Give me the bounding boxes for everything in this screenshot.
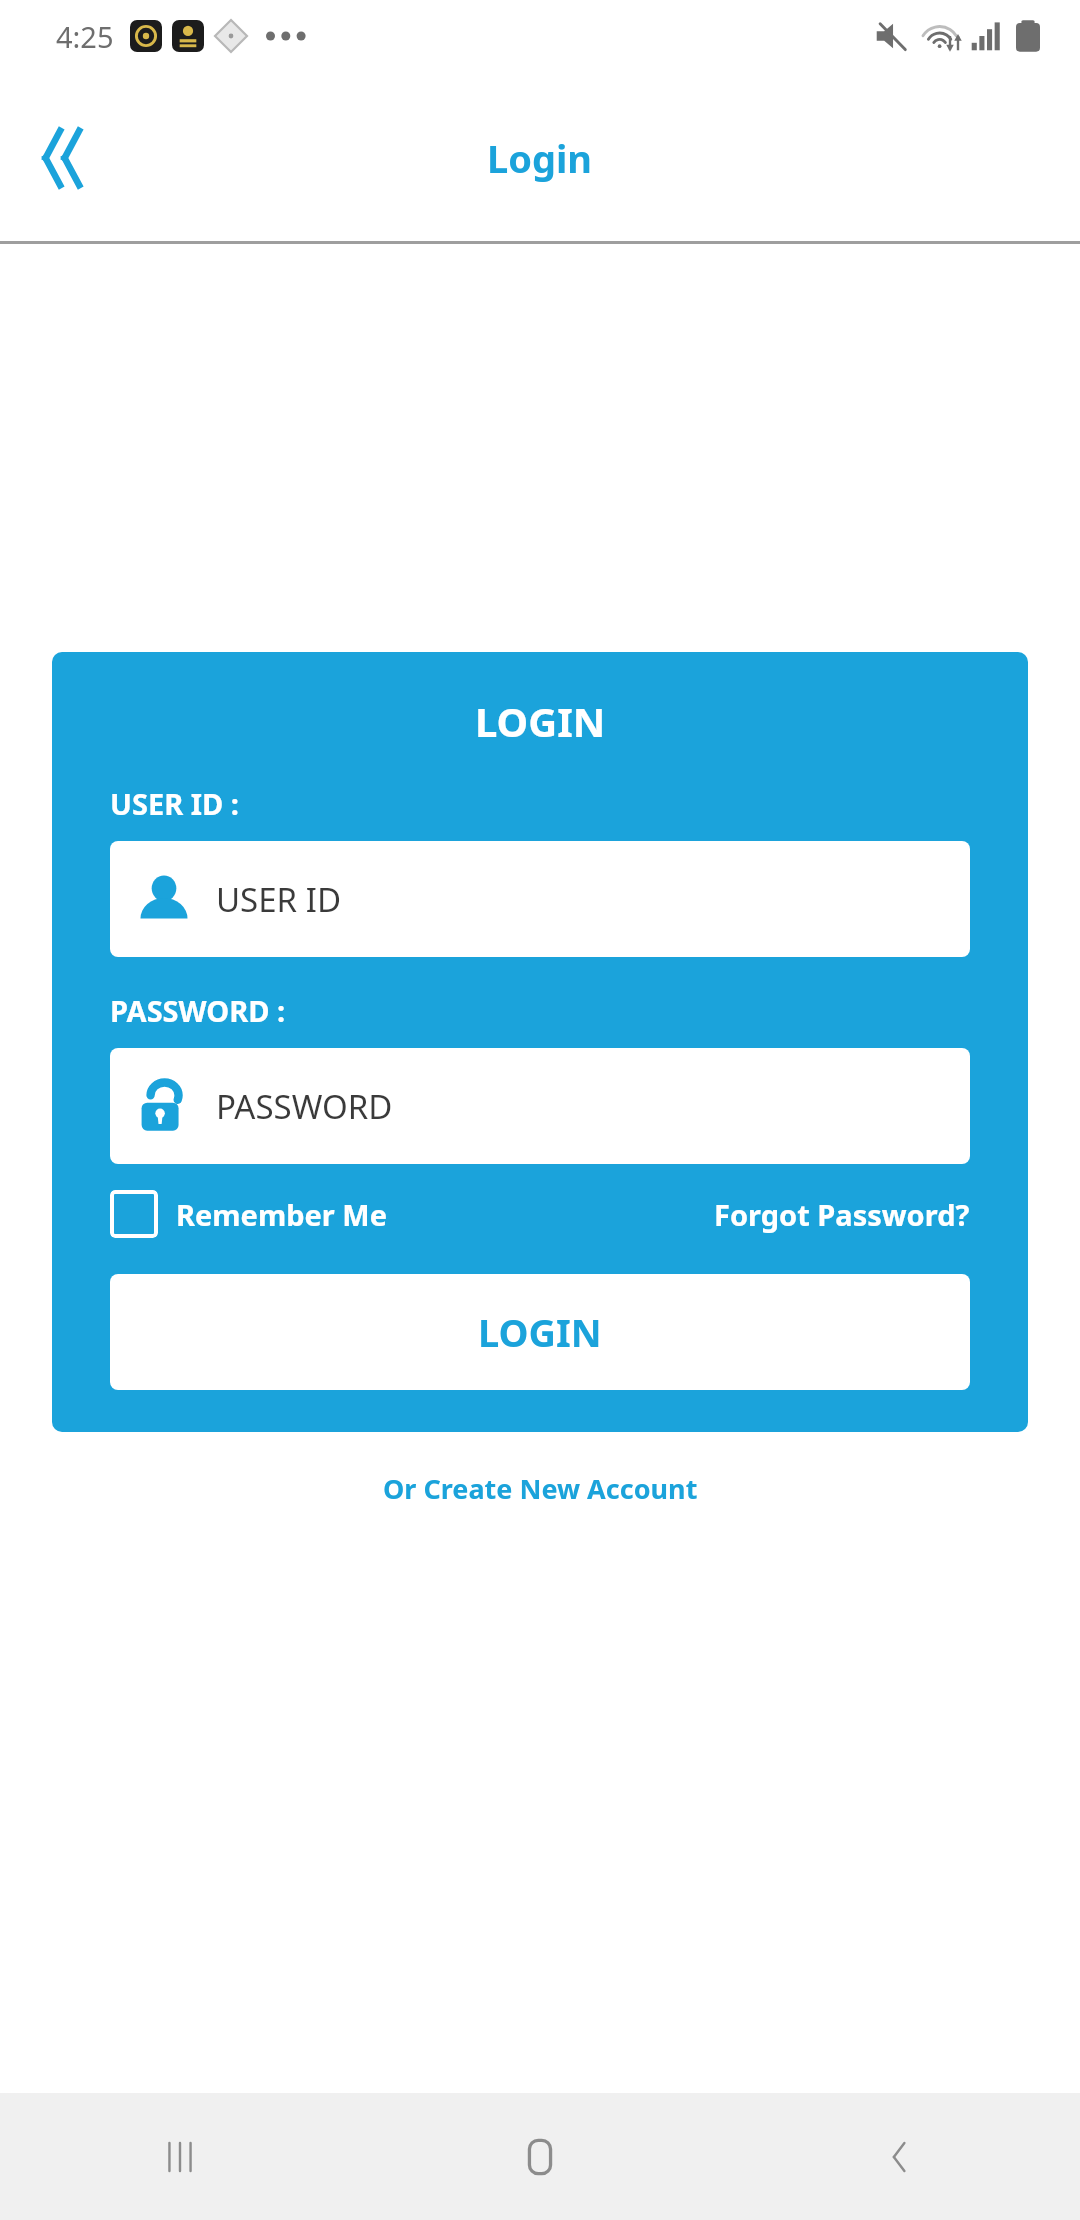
button[interactable]: Back bbox=[720, 2093, 1080, 2220]
button[interactable]: Remember Me bbox=[110, 1190, 388, 1238]
staticText: LOGIN bbox=[475, 694, 606, 748]
button[interactable]: Home bbox=[360, 2093, 720, 2220]
staticText: LOGIN bbox=[478, 1306, 602, 1358]
staticText: Login bbox=[487, 132, 593, 184]
button[interactable]: LOGIN bbox=[110, 1274, 970, 1390]
button[interactable]: USER ID bbox=[110, 841, 970, 957]
staticText: Remember Me bbox=[176, 1195, 388, 1234]
staticText: Forgot Password? bbox=[714, 1195, 970, 1234]
button[interactable]: Recents bbox=[0, 2093, 360, 2220]
staticText: PASSWORD bbox=[216, 1084, 393, 1129]
button[interactable]: Forgot Password? bbox=[714, 1195, 970, 1234]
staticText: USER ID bbox=[216, 877, 341, 922]
button[interactable]: Or Create New Account bbox=[373, 1464, 708, 1513]
staticText: Or Create New Account bbox=[383, 1470, 698, 1507]
staticText: PASSWORD : bbox=[110, 991, 286, 1030]
staticText: USER ID : bbox=[110, 784, 239, 823]
button[interactable]: Back bbox=[22, 112, 114, 204]
button[interactable]: PASSWORD bbox=[110, 1048, 970, 1164]
staticText: 4:25 bbox=[56, 17, 114, 56]
